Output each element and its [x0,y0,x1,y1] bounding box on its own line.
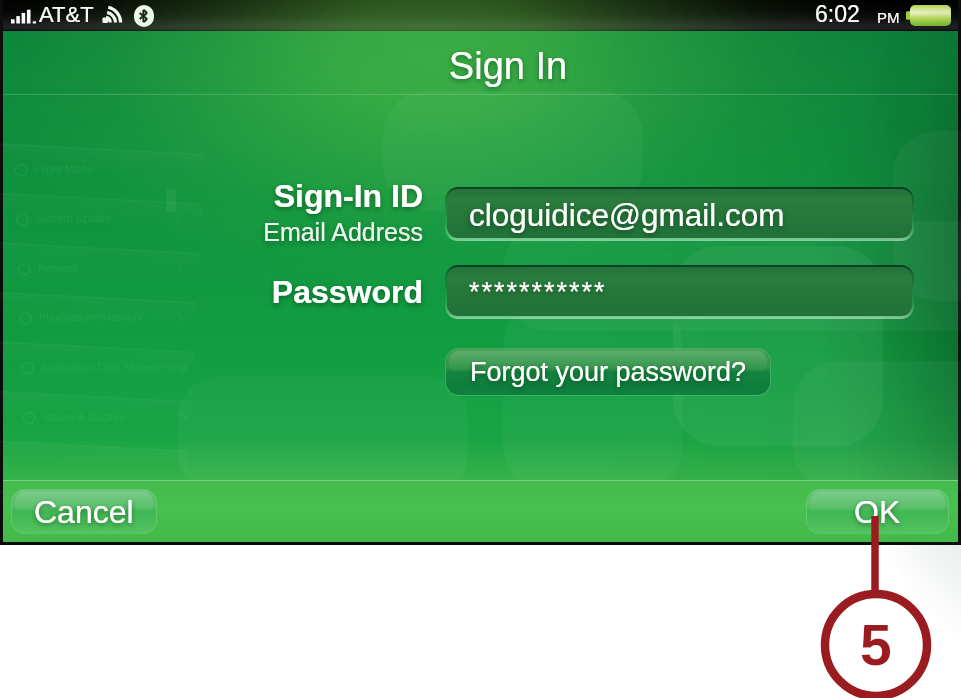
staticText: 5 [860,613,892,677]
staticText: Forgot your password? [470,357,747,387]
button[interactable]: OK [806,489,949,534]
button[interactable]: *********** [445,265,914,319]
staticText: PlayStation®Network [39,311,144,323]
staticText: Application Data Management [41,361,189,373]
staticText: AT&T [39,2,94,27]
staticText: Flight Mode [35,163,93,175]
staticText: PM [877,9,900,26]
staticText: Password [233,274,423,310]
staticText: Sign-In ID [233,178,423,214]
staticText: Sound & Display [43,411,125,423]
staticText: cloguidice@gmail.com [469,197,785,232]
staticText: System Update [36,212,112,224]
staticText: Network [38,262,79,274]
staticText: Email Address [233,218,423,246]
staticText: *********** [469,277,607,307]
button[interactable]: Cancel [11,489,157,534]
staticText: Cancel [34,494,134,530]
button[interactable]: Forgot your password? [445,348,771,396]
staticText: OK [854,494,901,530]
staticText: 6:02 [815,1,860,27]
staticText: Sign In [358,45,658,87]
button[interactable]: cloguidice@gmail.com [445,187,914,241]
